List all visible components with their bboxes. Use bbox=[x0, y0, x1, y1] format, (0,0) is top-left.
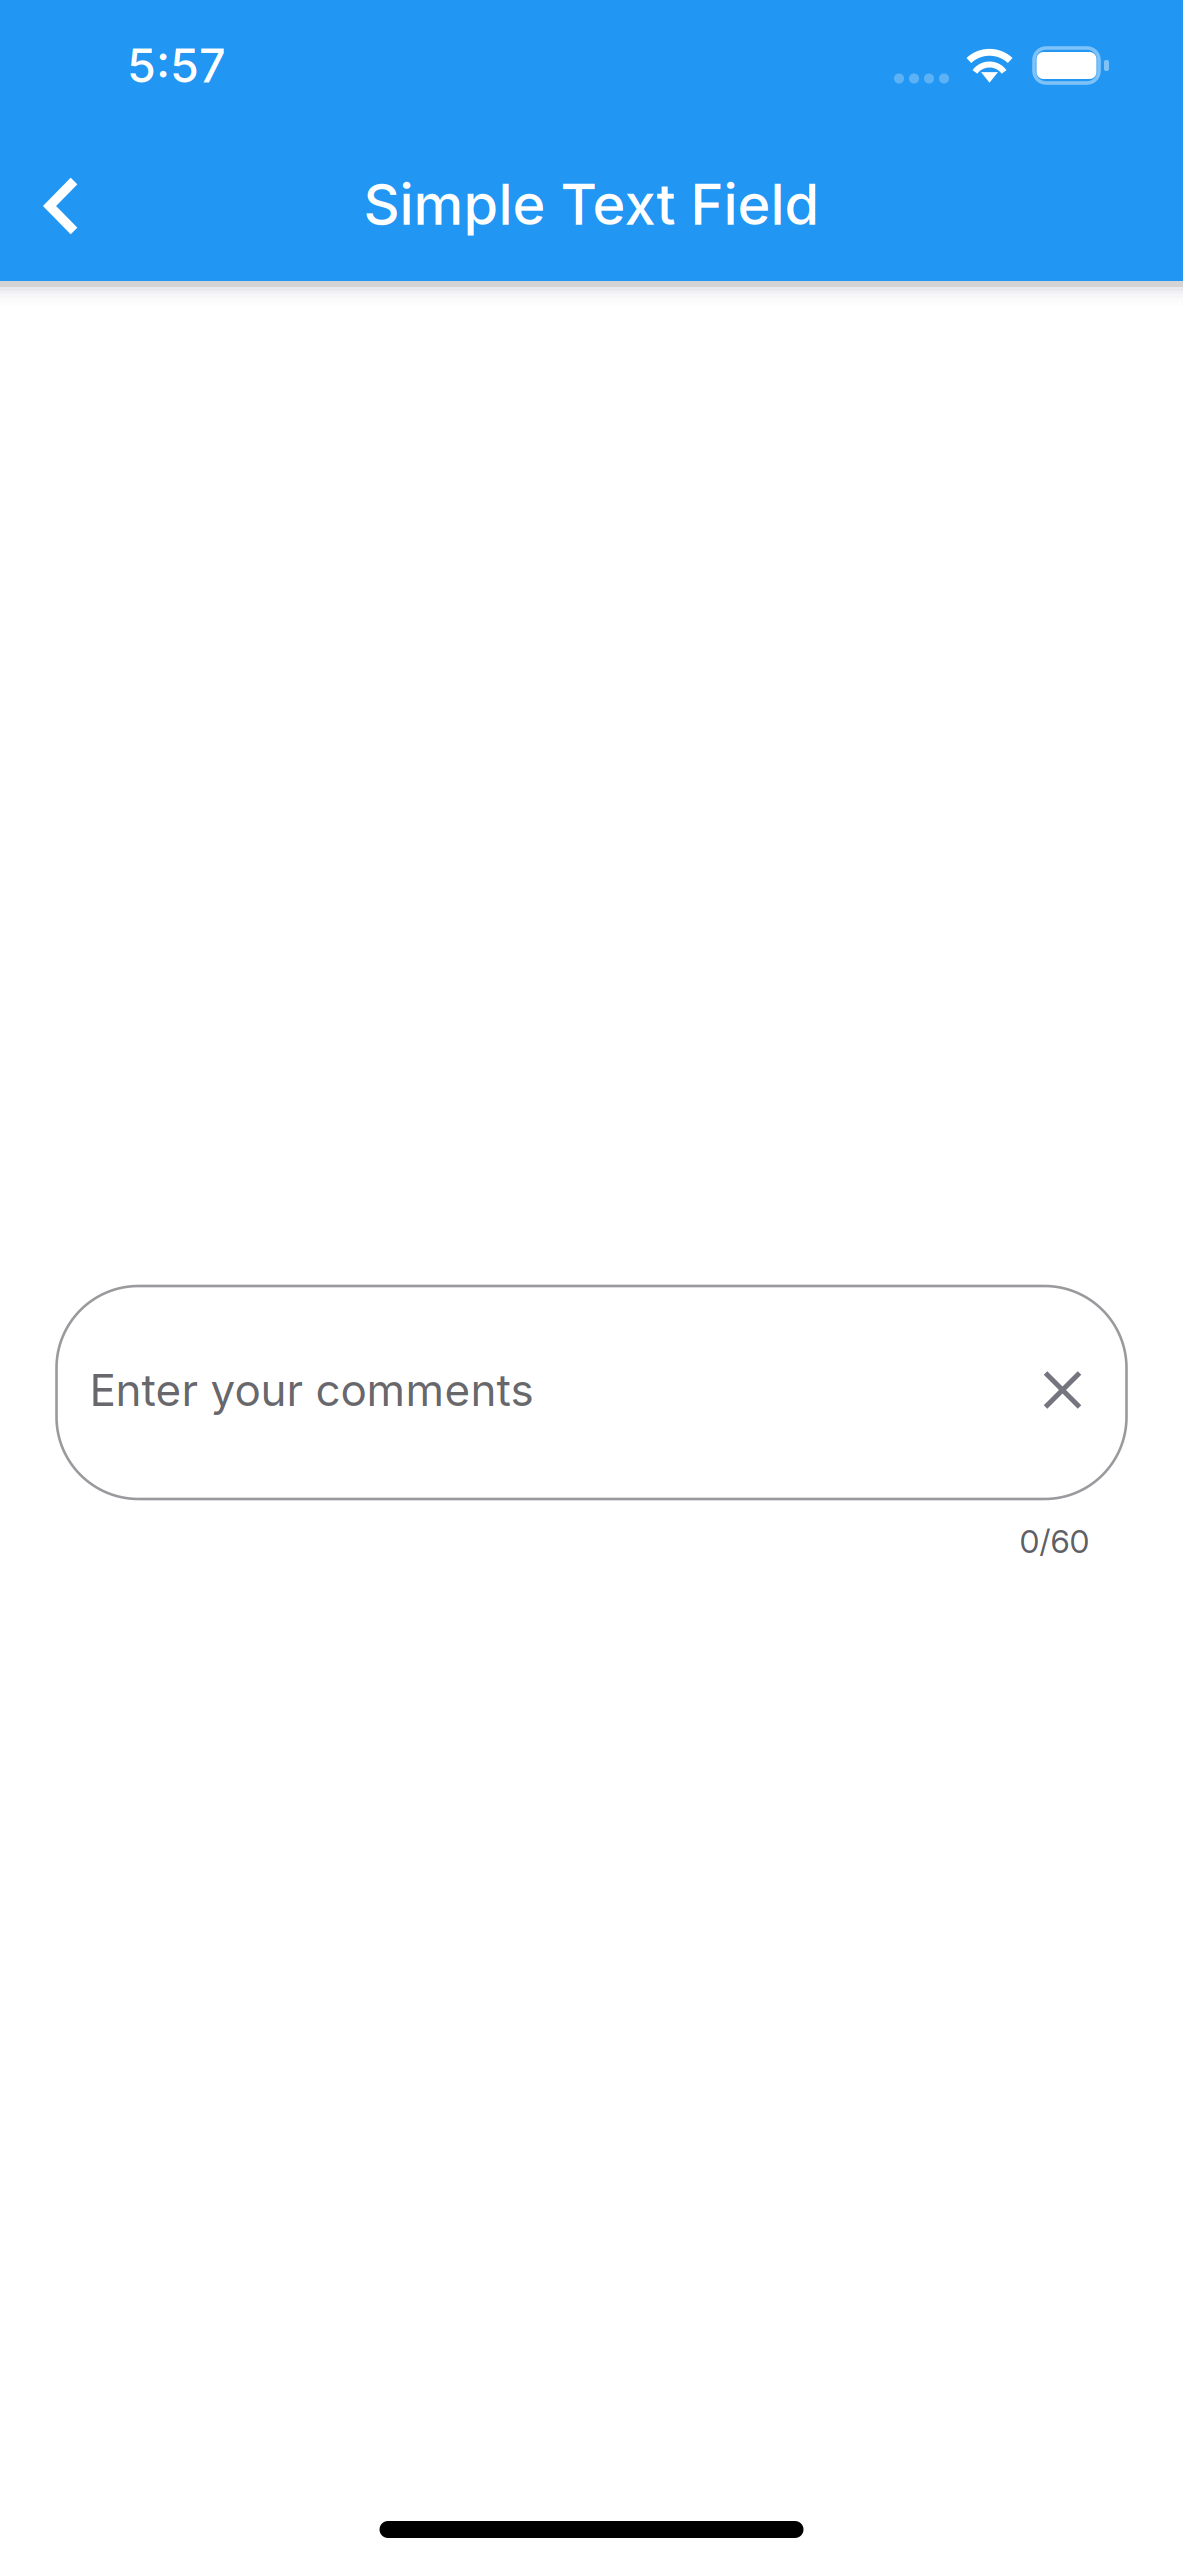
staticText: 5:57 bbox=[127, 37, 226, 94]
staticText: 0/60 bbox=[1019, 1522, 1089, 1561]
button[interactable]: Back bbox=[0, 131, 119, 281]
button[interactable]: Clear text bbox=[1027, 1355, 1097, 1430]
staticText: Simple Text Field bbox=[363, 171, 819, 238]
staticText: Enter your comments bbox=[89, 1363, 533, 1417]
